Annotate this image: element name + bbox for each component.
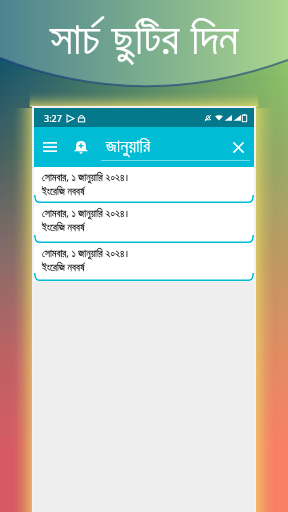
- button[interactable]: Add alert: [68, 134, 94, 160]
- button[interactable]: সোমবার, ১ জানুয়ারি ২০২৪।: [34, 243, 254, 281]
- button[interactable]: Clear search: [225, 134, 251, 160]
- staticText: জানুয়ারি: [106, 138, 151, 156]
- staticText: ইংরেজি নববর্ষ: [42, 220, 85, 234]
- staticText: সোমবার, ১ জানুয়ারি ২০২৪।: [42, 206, 129, 220]
- staticText: সার্চ ছুটির দিন: [50, 6, 239, 67]
- button[interactable]: Menu: [37, 134, 63, 160]
- staticText: সোমবার, ১ জানুয়ারি ২০২৪।: [42, 246, 129, 260]
- staticText: সোমবার, ১ জানুয়ারি ২০২৪।: [42, 170, 129, 184]
- button[interactable]: সোমবার, ১ জানুয়ারি ২০২৪।: [34, 167, 254, 203]
- staticText: ইংরেজি নববর্ষ: [42, 184, 85, 198]
- button[interactable]: সোমবার, ১ জানুয়ারি ২০২৪।: [34, 203, 254, 243]
- staticText: ইংরেজি নববর্ষ: [42, 260, 85, 274]
- staticText: 3:27: [44, 112, 62, 124]
